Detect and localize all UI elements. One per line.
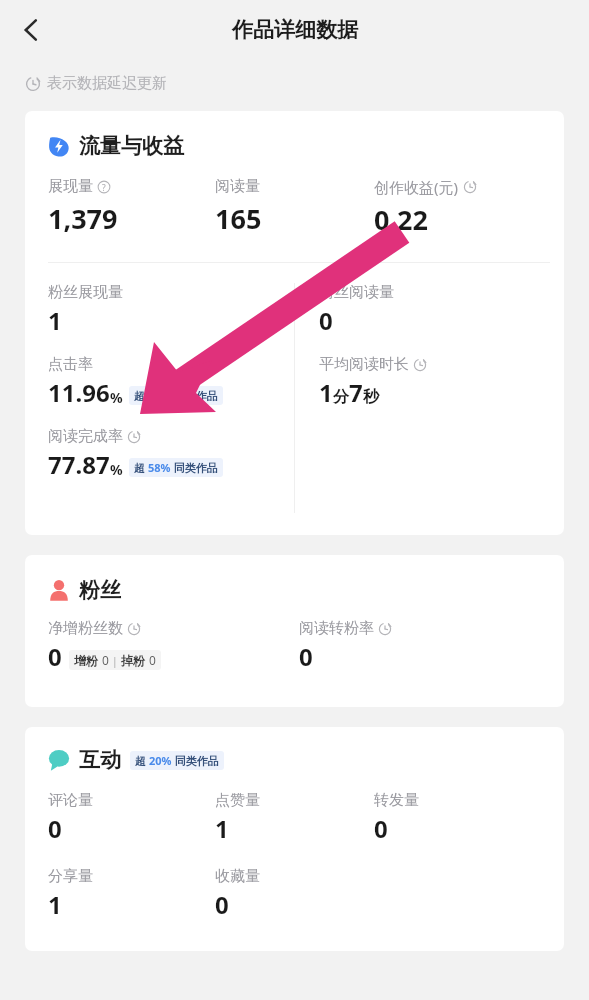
staticText: 粉丝阅读量 [319,283,394,302]
staticText: 77.87 [48,448,110,481]
staticText: 超 [134,460,148,475]
staticText: 同类作品 [172,753,219,768]
button[interactable]: 返回 [8,7,54,53]
staticText: 0 [215,888,229,921]
staticText: 表示数据延迟更新 [47,74,167,93]
staticText: 评论量 [48,791,93,810]
staticText: 同类作品 [171,460,218,475]
staticText: 点击率 [48,355,93,374]
staticText: 超 [135,753,149,768]
staticText: 转发量 [374,791,419,810]
staticText: 1 [48,304,62,337]
staticText: 58% [148,460,171,475]
staticText: ? [102,182,106,193]
staticText: | [109,653,121,668]
staticText: 0 [48,640,62,673]
staticText: 净增粉丝数 [48,619,123,638]
staticText: 20% [149,753,172,768]
staticText: 1 [48,888,62,921]
staticText: 秒 [363,387,379,407]
staticText: 流量与收益 [79,133,184,159]
staticText: 0 [48,812,62,845]
staticText: 展现量 [48,177,93,196]
staticText: 收藏量 [215,867,260,886]
staticText: 阅读转粉率 [299,619,374,638]
staticText: 1 [319,376,333,409]
staticText: 分 [333,387,349,407]
staticText: % [110,460,123,479]
staticText: 互动 [79,747,121,773]
staticText: 作品详细数据 [232,17,358,43]
staticText: 0.22 [374,201,428,238]
staticText: 分享量 [48,867,93,886]
staticText: 粉丝展现量 [48,283,123,302]
staticText: 0 [299,640,313,673]
staticText: 超 [134,388,148,403]
staticText: 7 [349,376,363,409]
staticText: 1,379 [48,200,118,237]
staticText: 点赞量 [215,791,260,810]
staticText: 增粉 [74,652,102,668]
staticText: 0 [374,812,388,845]
staticText: 165 [215,200,262,237]
staticText: 创作收益(元) [374,177,459,197]
staticText: 0 [102,652,109,668]
staticText: 阅读量 [215,177,260,196]
staticText: 同类作品 [171,388,218,403]
staticText: 0 [149,652,156,668]
staticText: 11.96 [48,376,110,409]
staticText: 掉粉 [121,652,149,668]
staticText: 粉丝 [79,577,121,603]
staticText: 平均阅读时长 [319,355,409,374]
staticText: 1 [215,812,229,845]
staticText: 0 [319,304,333,337]
staticText: % [110,388,123,407]
staticText: 阅读完成率 [48,427,123,446]
